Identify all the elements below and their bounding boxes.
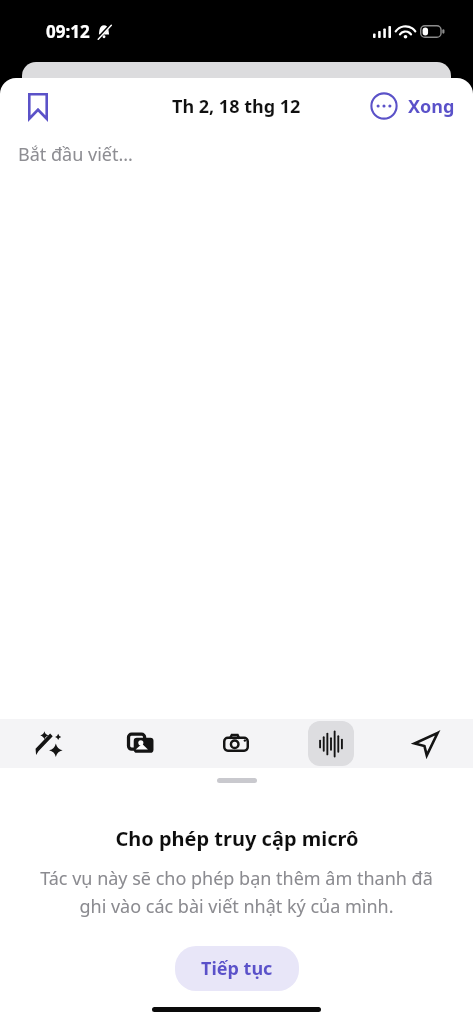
- button[interactable]: Camera: [213, 721, 259, 766]
- button[interactable]: Enhance with AI: [24, 721, 70, 766]
- staticText: Cho phép truy cập micrô: [115, 825, 359, 852]
- button[interactable]: Add photos: [118, 721, 164, 766]
- button[interactable]: Tiếp tục: [175, 946, 299, 991]
- staticText: Tiếp tục: [201, 956, 273, 981]
- button[interactable]: Xong: [404, 88, 459, 125]
- staticText: 09:12: [46, 20, 90, 43]
- button[interactable]: Bookmark: [16, 84, 60, 128]
- button[interactable]: Location: [403, 721, 449, 766]
- staticText: Bắt đầu viết...: [18, 142, 133, 167]
- staticText: Tác vụ này sẽ cho phép bạn thêm âm thanh…: [34, 866, 439, 918]
- button[interactable]: More options: [364, 86, 404, 126]
- staticText: Xong: [408, 94, 455, 119]
- button[interactable]: Record audio: [308, 721, 354, 766]
- staticText: Th 2, 18 thg 12: [172, 94, 301, 119]
